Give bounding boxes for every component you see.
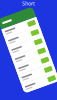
staticText: Short bbox=[22, 0, 35, 7]
